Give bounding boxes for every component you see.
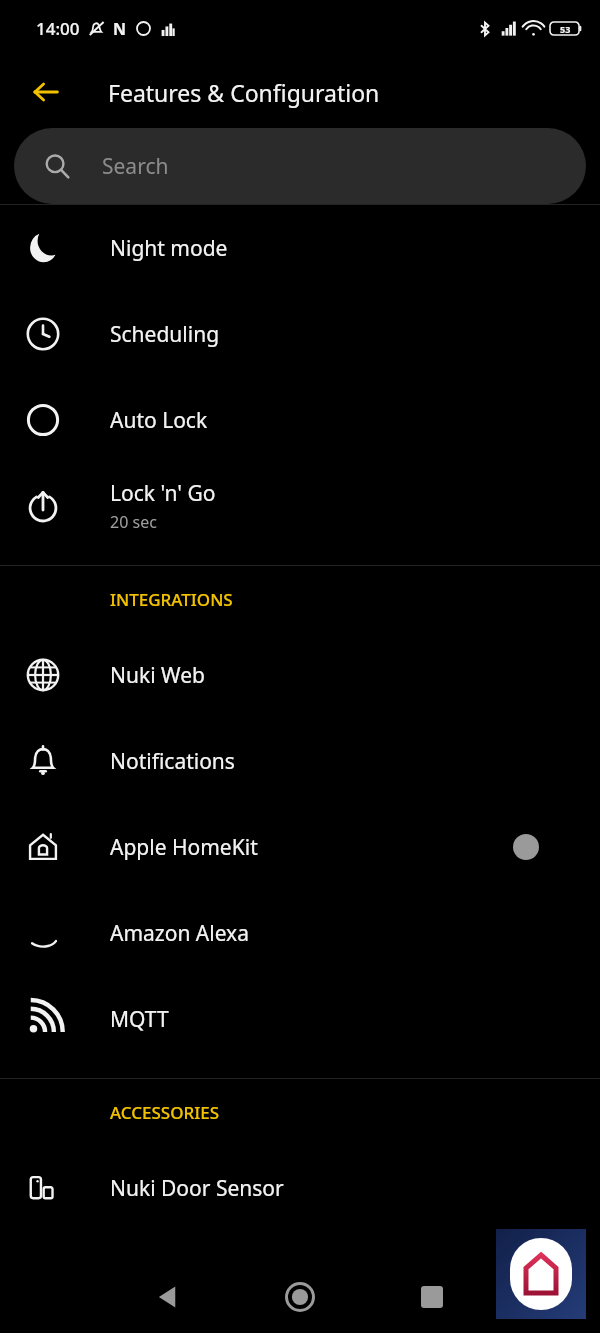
button[interactable]: Home — [272, 1269, 328, 1325]
staticText: Features & Configuration — [108, 77, 380, 108]
staticText: MQTT — [110, 1005, 169, 1034]
staticText: INTEGRATIONS — [110, 588, 233, 611]
staticText: Auto Lock — [110, 406, 208, 435]
staticText: N — [113, 18, 127, 40]
button[interactable]: Night mode — [0, 205, 600, 291]
button[interactable]: Notifications — [0, 718, 600, 804]
button[interactable]: Lock 'n' Go — [0, 463, 600, 549]
staticText: Amazon Alexa — [110, 919, 249, 948]
button[interactable]: MQTT — [0, 976, 600, 1062]
staticText: Night mode — [110, 234, 228, 263]
button[interactable]: Nuki app — [496, 1229, 586, 1319]
staticText: Nuki Door Sensor — [110, 1174, 284, 1203]
staticText: 20 sec — [110, 511, 157, 533]
staticText: Nuki Web — [110, 661, 205, 690]
button[interactable]: Auto Lock — [0, 377, 600, 463]
button[interactable]: Amazon Alexa — [0, 890, 600, 976]
staticText: ACCESSORIES — [110, 1101, 220, 1124]
staticText: Notifications — [110, 747, 235, 776]
button[interactable]: Back — [20, 66, 72, 118]
staticText: Lock 'n' Go — [110, 479, 216, 508]
button[interactable]: Back — [140, 1269, 196, 1325]
staticText: 14:00 — [36, 17, 80, 40]
staticText: Apple HomeKit — [110, 833, 258, 862]
button[interactable]: Recent apps — [404, 1269, 460, 1325]
button[interactable]: Scheduling — [0, 291, 600, 377]
button[interactable]: Nuki Door Sensor — [0, 1145, 600, 1231]
staticText: Search — [102, 152, 169, 181]
button[interactable]: Search — [14, 128, 586, 204]
button[interactable]: Apple HomeKit — [0, 804, 600, 890]
button[interactable]: Nuki Web — [0, 632, 600, 718]
staticText: 53 — [560, 23, 571, 35]
staticText: Scheduling — [110, 320, 220, 349]
